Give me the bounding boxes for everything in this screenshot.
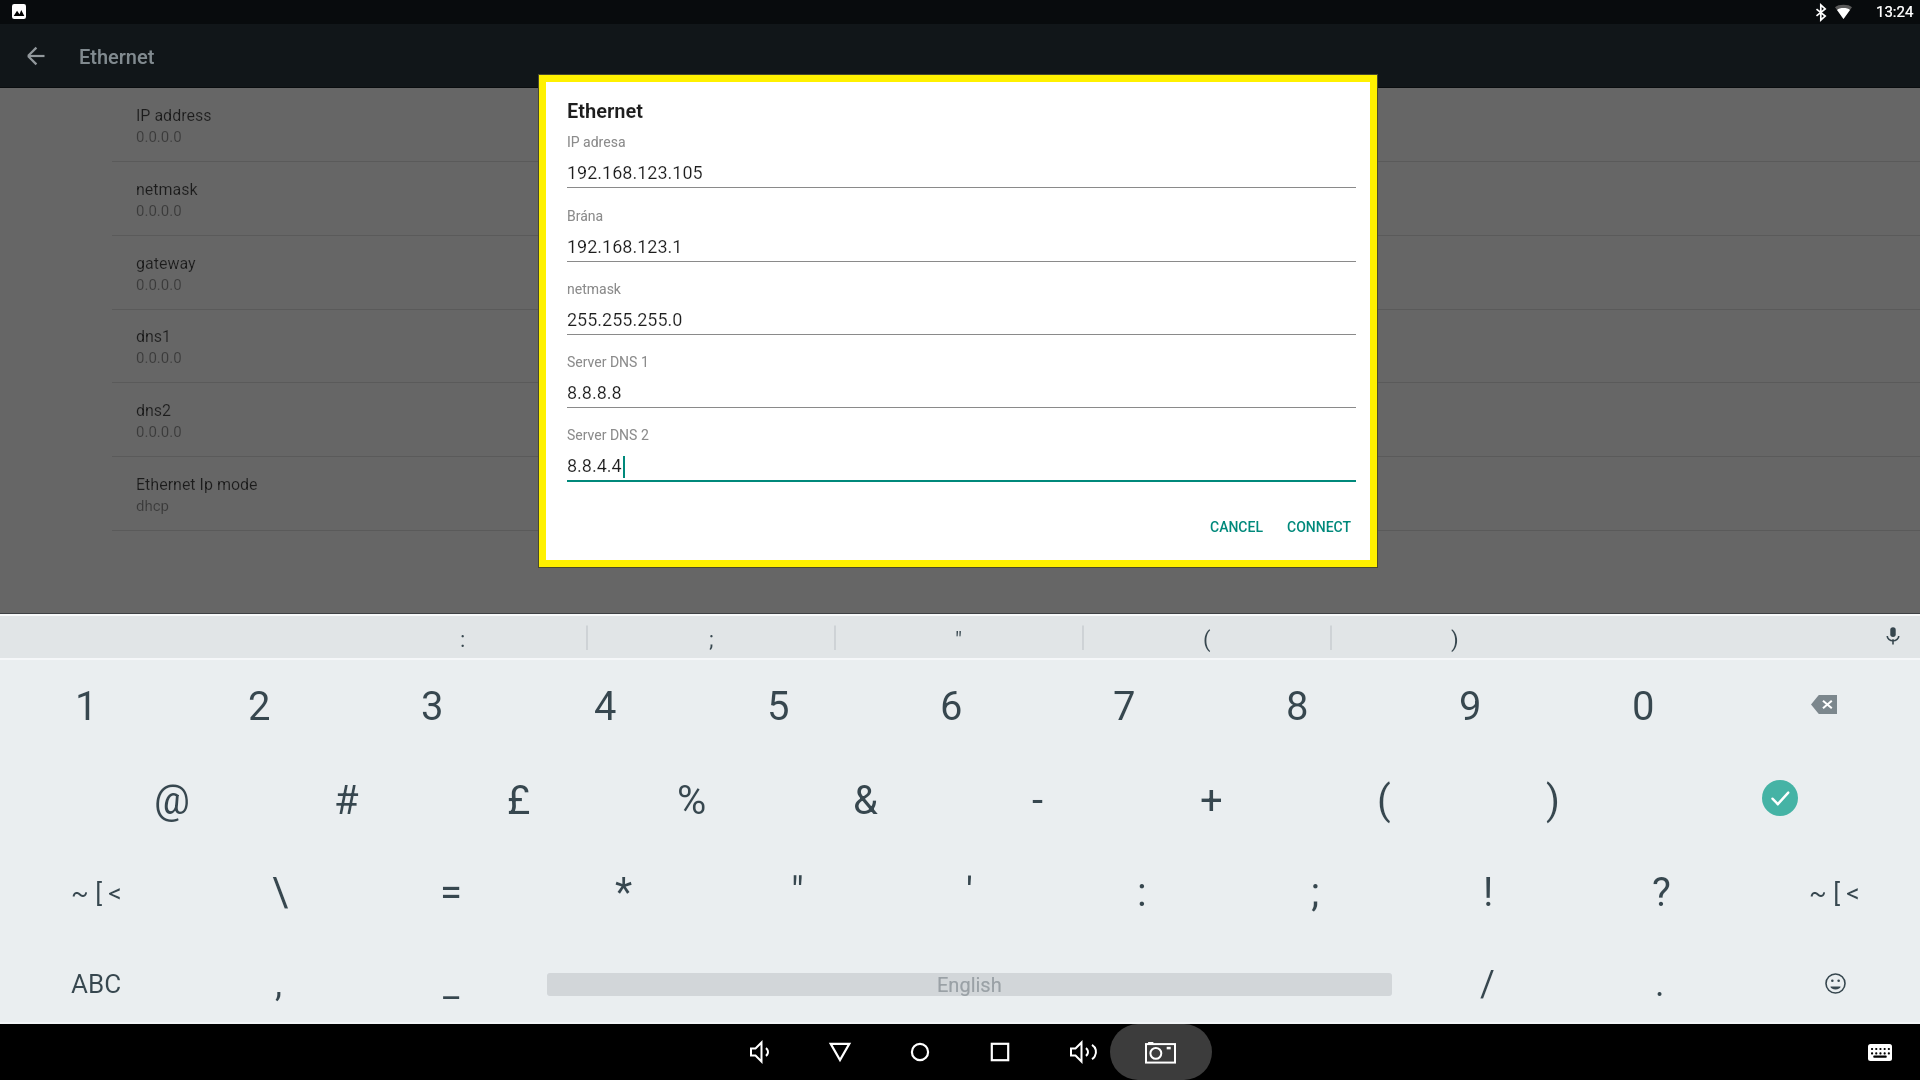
button[interactable]: = [371,847,531,938]
button[interactable]: ; [1235,847,1395,938]
button[interactable]: 0 [1563,661,1723,752]
button[interactable]: Ethernet Ip mode [0,457,1920,531]
button[interactable]: " [897,613,1021,658]
button[interactable]: , [199,938,359,1029]
staticText: dns2 [136,401,172,420]
staticText: £ [507,777,531,824]
button[interactable]: / [1407,938,1567,1029]
button[interactable]: ) [1473,755,1633,846]
staticText: 0.0.0.0 [136,423,182,441]
button[interactable]: & [785,755,945,846]
button[interactable]: ) [1393,613,1517,658]
button[interactable]: ; [649,613,773,658]
staticText: ! [1483,869,1494,916]
staticText: Ethernet [567,99,644,122]
staticText: # [334,777,359,824]
button[interactable]: _ [371,938,531,1029]
button[interactable]: Backspace [1764,661,1884,752]
staticText: ? [1652,869,1671,916]
button[interactable]: 4 [525,661,685,752]
staticText: 8 [1286,683,1309,730]
button[interactable]: Volume down [736,1024,784,1080]
staticText: ' [966,869,973,916]
button[interactable]: ' [889,847,1049,938]
button[interactable]: Volume up [1056,1024,1104,1080]
button[interactable]: 7 [1044,661,1204,752]
button[interactable]: # [266,755,426,846]
button[interactable]: 2 [179,661,339,752]
staticText: 192.168.123.105 [567,162,703,183]
button[interactable]: " [717,847,877,938]
staticText: CONNECT [1287,519,1352,535]
button[interactable]: 5 [698,661,858,752]
staticText: 8.8.8.8 [567,382,622,403]
button[interactable]: gateway [0,236,1920,310]
staticText: 9 [1459,683,1482,730]
staticText: . [1655,963,1665,1005]
staticText: 0.0.0.0 [136,128,182,146]
staticText: ( [1377,777,1391,824]
button[interactable]: 9 [1390,661,1550,752]
staticText: English [937,973,1002,996]
button[interactable]: £ [439,755,599,846]
button[interactable]: 8 [1217,661,1377,752]
button[interactable]: IP address [0,88,1920,162]
button[interactable]: : [1062,847,1222,938]
button[interactable]: : [401,613,525,658]
staticText: " [955,627,963,653]
staticText: gateway [136,254,196,273]
staticText: 7 [1113,683,1136,730]
staticText: netmask [567,281,621,297]
staticText: 255.255.255.0 [567,309,683,330]
staticText: Ethernet Ip mode [136,475,258,494]
staticText: : [460,627,466,653]
staticText: Server DNS 2 [567,427,649,443]
button[interactable]: Back [18,24,54,87]
button[interactable]: Recents [976,1024,1024,1080]
button[interactable]: dns1 [0,309,1920,383]
staticText: \ [272,869,289,916]
button[interactable]: - [958,755,1118,846]
button[interactable]: Emoji [1775,938,1895,1029]
button[interactable]: dns2 [0,383,1920,457]
staticText: 8.8.4.4 [567,455,622,476]
button[interactable]: ( [1145,613,1269,658]
button[interactable]: CONNECT [1277,509,1361,545]
button[interactable]: @ [92,755,252,846]
button[interactable]: English [547,973,1392,996]
staticText: ; [1311,869,1320,916]
staticText: ) [1451,627,1459,653]
staticText: dns1 [136,327,172,346]
button[interactable]: ! [1408,847,1568,938]
button[interactable]: + [1131,755,1291,846]
staticText: 0.0.0.0 [136,349,182,367]
button[interactable]: ~ [ < [1754,847,1914,938]
button[interactable]: ABC [16,938,176,1029]
button[interactable]: Enter [1720,755,1840,846]
button[interactable]: Screenshot [1110,1024,1212,1080]
button[interactable]: ? [1581,847,1741,938]
button[interactable]: Back [816,1024,864,1080]
staticText: 6 [940,683,963,730]
button[interactable]: . [1580,938,1740,1029]
button[interactable]: * [544,847,704,938]
button[interactable]: ~ [ < [16,847,176,938]
button[interactable]: \ [200,847,360,938]
staticText: 2 [248,683,271,730]
button[interactable]: Keyboard [1856,1024,1904,1080]
button[interactable]: Voice input [1876,613,1910,658]
staticText: 4 [594,683,617,730]
button[interactable]: 3 [352,661,512,752]
button[interactable]: 1 [6,661,166,752]
button[interactable]: Home [896,1024,944,1080]
button[interactable]: ( [1304,755,1464,846]
staticText: 0.0.0.0 [136,276,182,294]
staticText: Brána [567,208,604,224]
staticText: * [615,869,633,916]
button[interactable]: 6 [871,661,1031,752]
button[interactable]: % [612,755,772,846]
staticText: ; [709,627,714,653]
staticText: + [1200,777,1223,824]
button[interactable]: netmask [0,162,1920,236]
button[interactable]: CANCEL [1198,509,1274,545]
